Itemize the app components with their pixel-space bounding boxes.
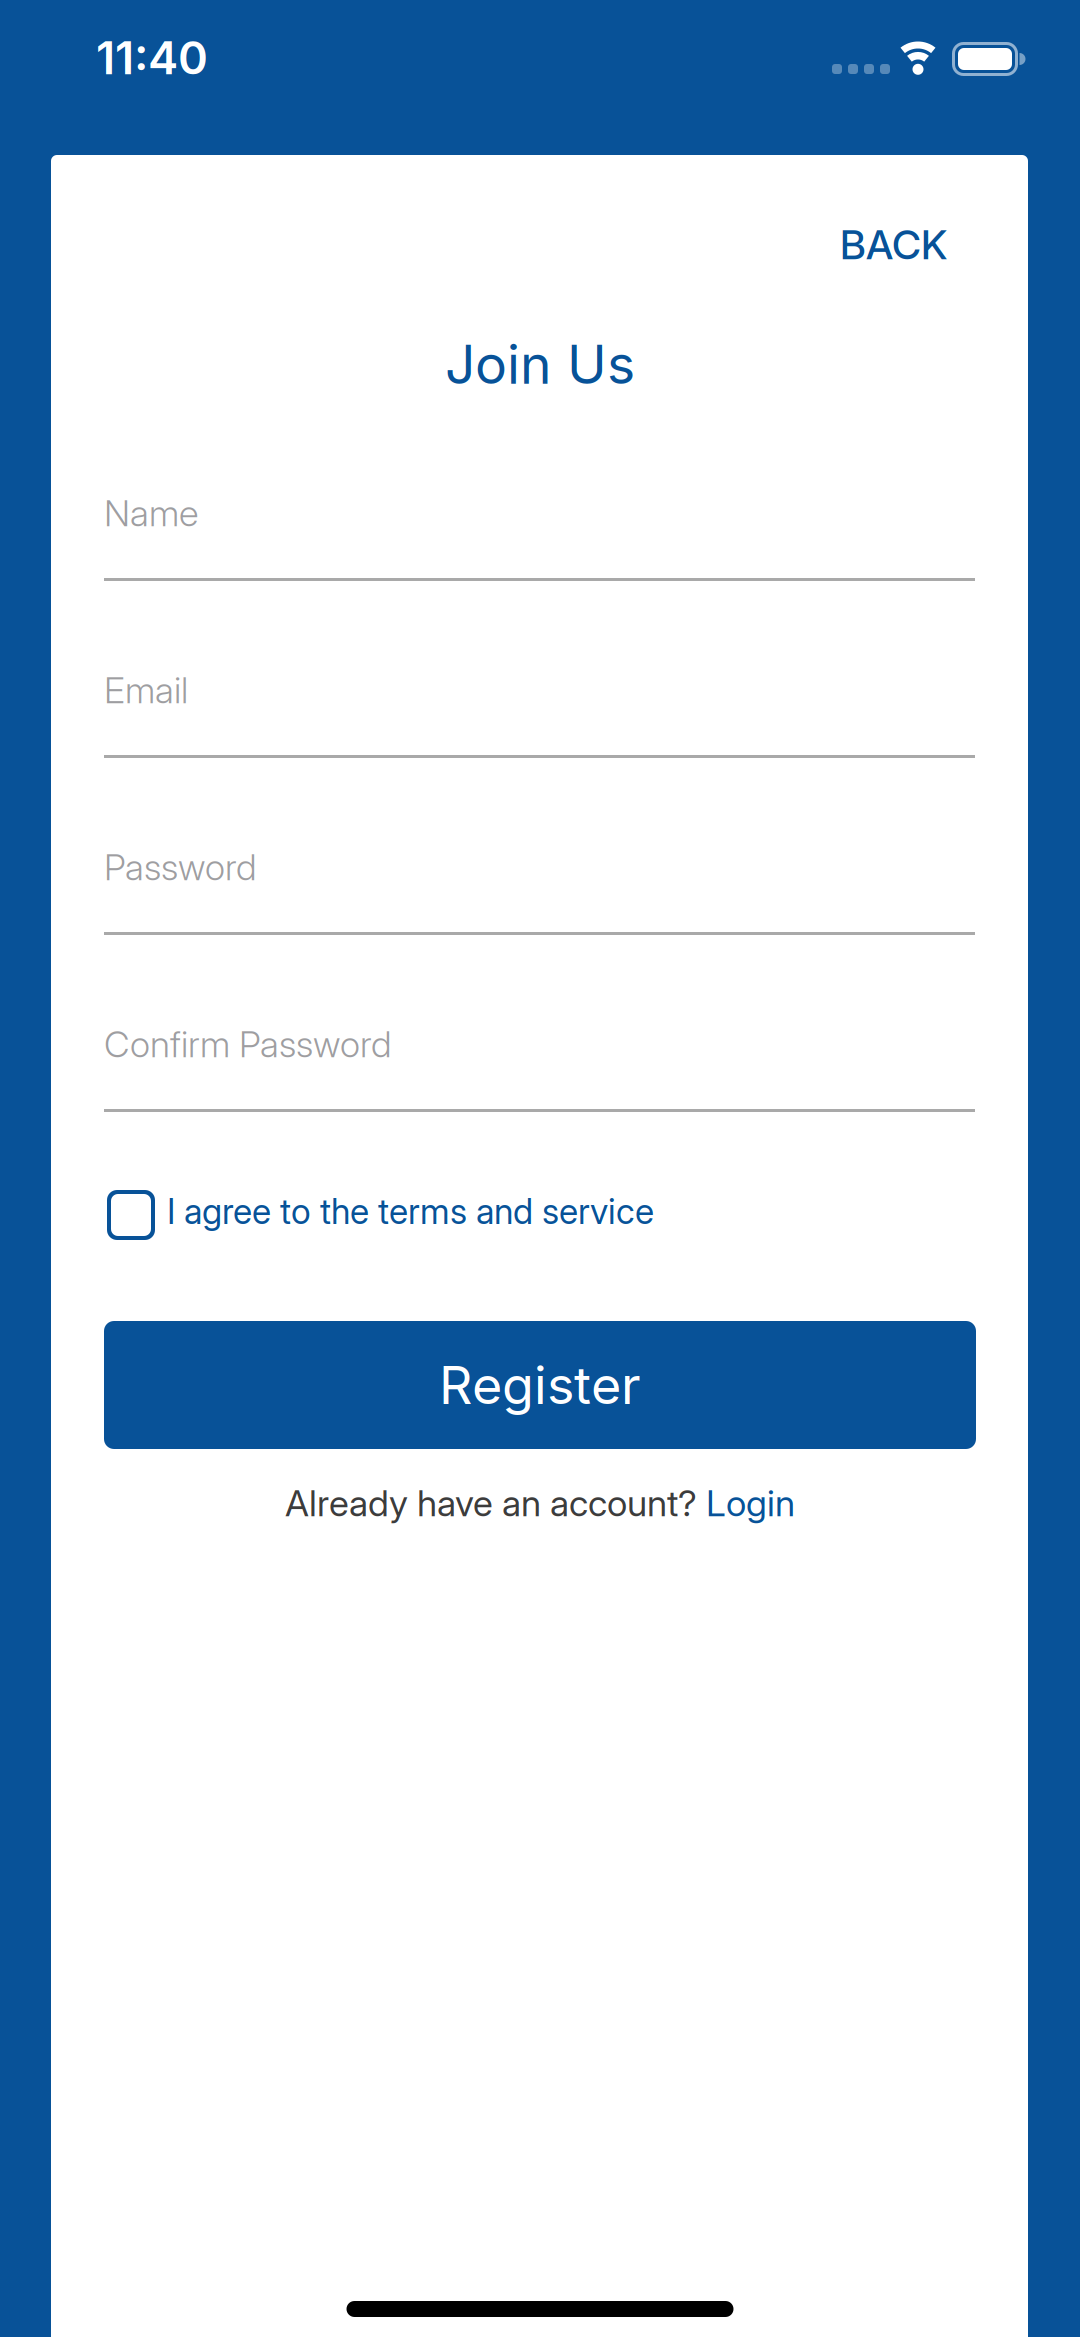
button[interactable]: Register: [104, 1321, 976, 1449]
staticText: BACK: [840, 221, 947, 268]
button[interactable]: BACK: [840, 221, 947, 268]
staticText: Already have an account?: [285, 1482, 706, 1524]
staticText: Name: [104, 492, 199, 534]
staticText: Password: [104, 846, 257, 888]
button[interactable]: Login: [706, 1482, 795, 1524]
staticText: Register: [439, 1354, 641, 1416]
staticText: Join Us: [445, 333, 635, 396]
staticText: Email: [104, 669, 188, 711]
staticText: Login: [706, 1482, 795, 1524]
staticText: Confirm Password: [104, 1023, 392, 1065]
staticText: I agree to the terms and service: [167, 1191, 654, 1232]
staticText: 11:40: [96, 31, 208, 84]
button[interactable]: I agree to the terms and service: [0, 0, 654, 1240]
